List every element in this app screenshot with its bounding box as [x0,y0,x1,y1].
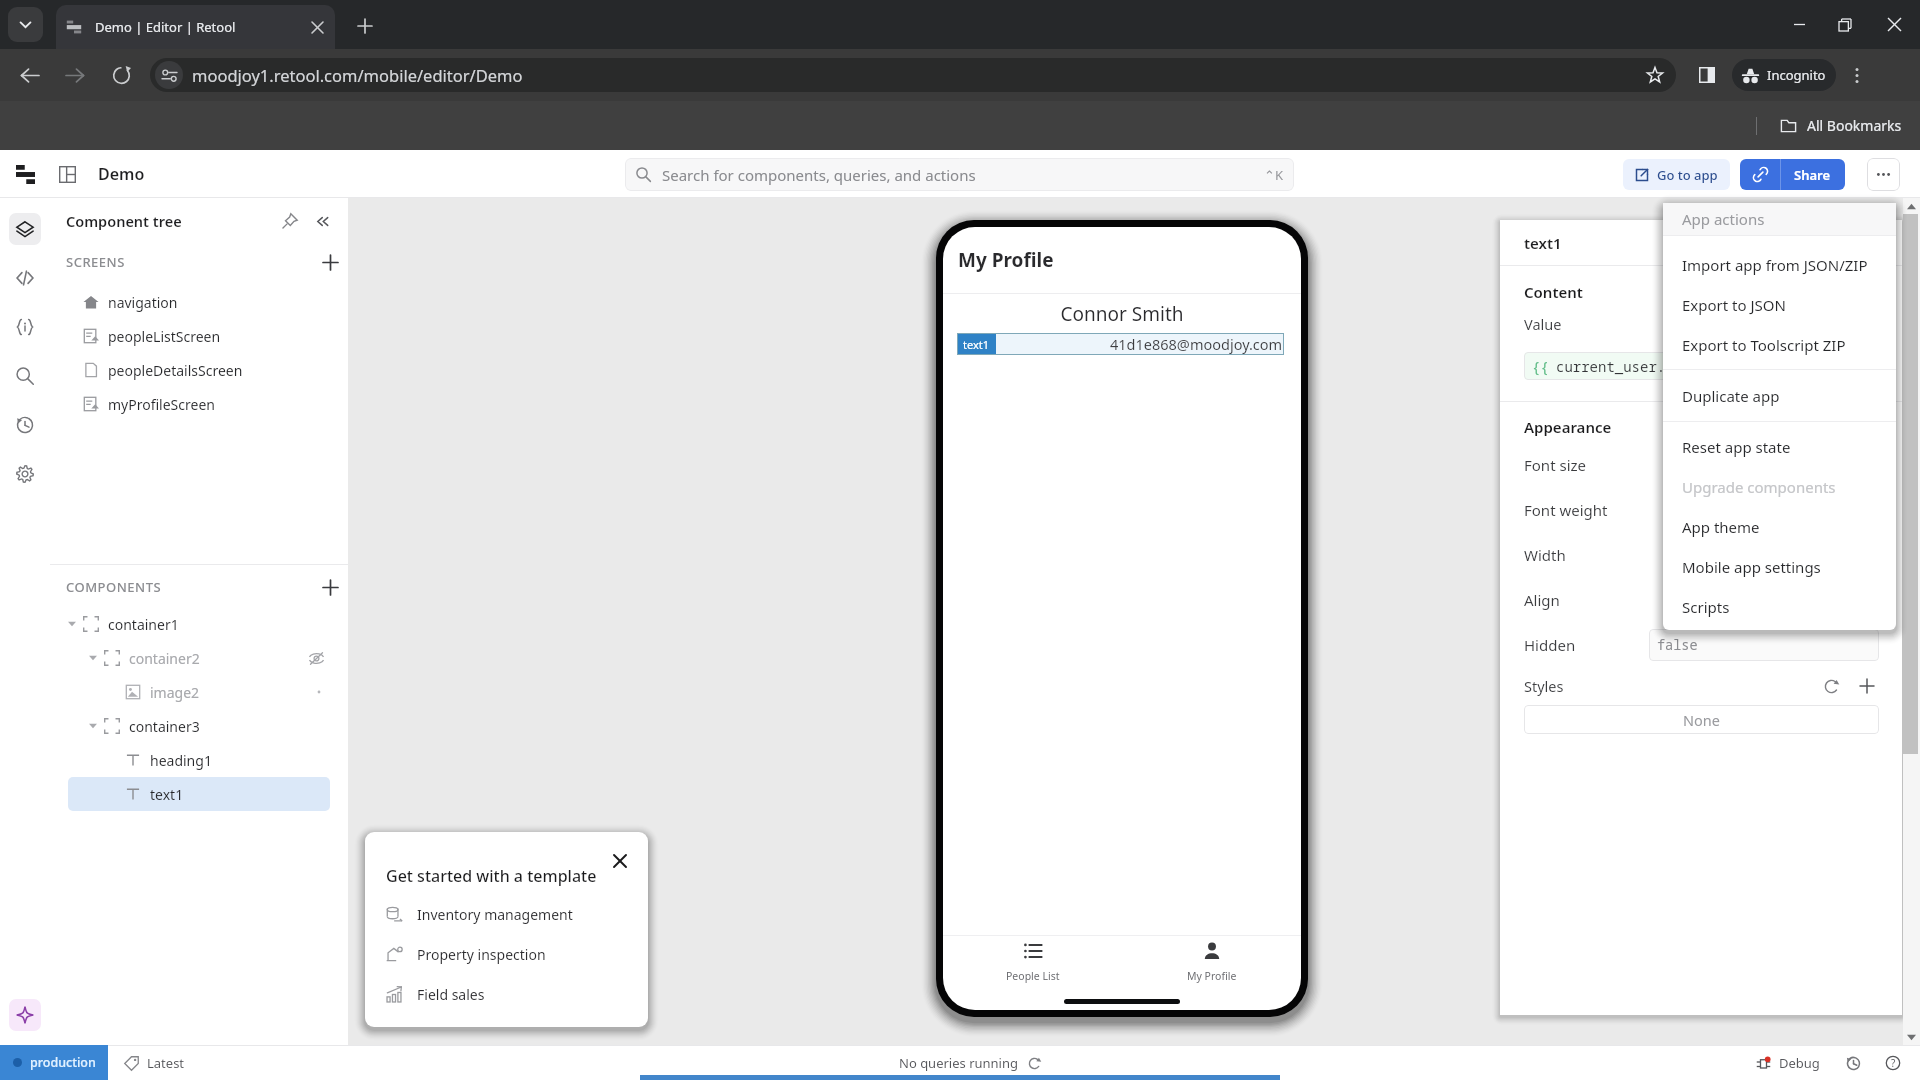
staticText: None [1683,710,1720,730]
staticText: text1 [150,785,184,804]
button[interactable]: production [0,1045,108,1080]
button[interactable]: Bookmark [1640,60,1670,90]
staticText: Import app from JSON/ZIP [1682,255,1868,275]
button[interactable]: Code [9,262,41,294]
button[interactable]: navigation [68,285,330,319]
button[interactable]: Add COMPONENTS [319,576,341,598]
button[interactable]: More options [1840,58,1874,92]
button[interactable]: State [9,311,41,343]
button[interactable]: Reload [98,52,144,98]
button[interactable]: container3 [68,709,330,743]
staticText: Incognito [1767,66,1826,84]
button[interactable]: Search for components, queries, and acti… [625,158,1294,191]
staticText: All Bookmarks [1807,116,1902,135]
button[interactable]: Side panel [1690,58,1724,92]
button[interactable]: My Profile [1122,936,1301,988]
button[interactable]: false [1649,629,1879,661]
button[interactable]: text1 [68,777,330,811]
button[interactable]: Close window [1868,0,1920,49]
staticText: text1 [963,337,990,352]
staticText: 41d1e868@moodjoy.com [1110,334,1283,354]
staticText: Export to JSON [1682,295,1786,315]
button[interactable]: Toggle panels [52,159,82,189]
staticText: Debug [1779,1054,1820,1072]
button[interactable]: heading1 [68,743,330,777]
staticText: Field sales [417,985,485,1004]
button[interactable]: History [9,409,41,441]
staticText: Scripts [1682,597,1730,617]
staticText: SCREENS [66,253,125,271]
button[interactable]: Restore [1822,0,1868,49]
button[interactable]: Share [1740,159,1845,190]
staticText: heading1 [150,751,212,770]
button[interactable]: Reset app state [1663,427,1896,467]
button[interactable]: container2 [68,641,330,675]
staticText: Demo | Editor | Retool [95,18,236,36]
button[interactable]: New tab [348,9,381,42]
button[interactable]: Inventory management [386,894,648,934]
staticText: Width [1524,545,1566,565]
staticText: Search for components, queries, and acti… [662,165,976,185]
staticText: Value [1524,314,1562,334]
button[interactable]: Demo | Editor | Retool [56,5,335,49]
button[interactable]: Add style [1855,675,1879,697]
button[interactable]: Mobile app settings [1663,547,1896,587]
button[interactable]: Layers [9,213,41,245]
button[interactable]: Forward [52,52,98,98]
button[interactable]: AI assistant [9,999,41,1031]
button[interactable]: Add SCREENS [319,251,341,273]
button[interactable]: Close [607,848,633,874]
button[interactable]: Help [1882,1052,1904,1074]
staticText: moodjoy1.retool.com/mobile/editor/Demo [192,64,523,86]
button[interactable]: All Bookmarks [1774,112,1908,139]
staticText: Go to app [1657,166,1718,184]
button[interactable]: App actions [1867,158,1900,191]
button[interactable]: Minimize [1776,0,1822,49]
button[interactable]: Export to Toolscript ZIP [1663,325,1896,365]
button[interactable]: Export to JSON [1663,285,1896,325]
button[interactable]: Search tabs [8,7,43,42]
staticText: Property inspection [417,945,546,964]
button[interactable]: Close tab [305,15,329,39]
button[interactable]: peopleDetailsScreen [68,353,330,387]
button[interactable]: Reset styles [1819,675,1843,697]
button[interactable]: Incognito [1732,59,1836,91]
button[interactable]: Latest [124,1054,185,1072]
staticText: Reset app state [1682,437,1791,457]
staticText: Inventory management [417,905,573,924]
button[interactable]: Go to app [1623,159,1730,190]
button[interactable]: Field sales [386,974,648,1014]
staticText: App actions [1682,209,1765,229]
button[interactable]: Import app from JSON/ZIP [1663,245,1896,285]
staticText: false [1657,636,1698,654]
staticText: peopleListScreen [108,327,221,346]
button[interactable]: Property inspection [386,934,648,974]
button[interactable]: Upgrade components [1663,467,1896,507]
button[interactable]: container1 [68,607,330,641]
button[interactable]: Collapse panel [310,209,334,233]
staticText: container2 [129,649,200,668]
button[interactable]: None [1524,705,1879,734]
button[interactable]: myProfileScreen [68,387,330,421]
button[interactable]: History [1842,1052,1864,1074]
button[interactable]: {{ [1524,352,1879,380]
button[interactable]: Pin panel [278,209,302,233]
button[interactable]: App theme [1663,507,1896,547]
button[interactable]: Scripts [1663,587,1896,627]
staticText: myProfileScreen [108,395,215,414]
staticText: No queries running [899,1054,1019,1072]
button[interactable]: People List [943,936,1122,988]
button[interactable]: Duplicate app [1663,376,1896,416]
button[interactable]: Back [6,52,52,98]
button[interactable]: peopleListScreen [68,319,330,353]
staticText: Export to Toolscript ZIP [1682,335,1846,355]
staticText: peopleDetailsScreen [108,361,243,380]
button[interactable]: image2 [68,675,330,709]
staticText: container1 [108,615,179,634]
staticText: App theme [1682,517,1760,537]
button[interactable]: Retool home [10,159,40,189]
button[interactable]: moodjoy1.retool.com/mobile/editor/Demo [150,58,1676,92]
button[interactable]: Search [9,360,41,392]
button[interactable]: Debug [1756,1054,1820,1072]
button[interactable]: Settings [9,458,41,490]
